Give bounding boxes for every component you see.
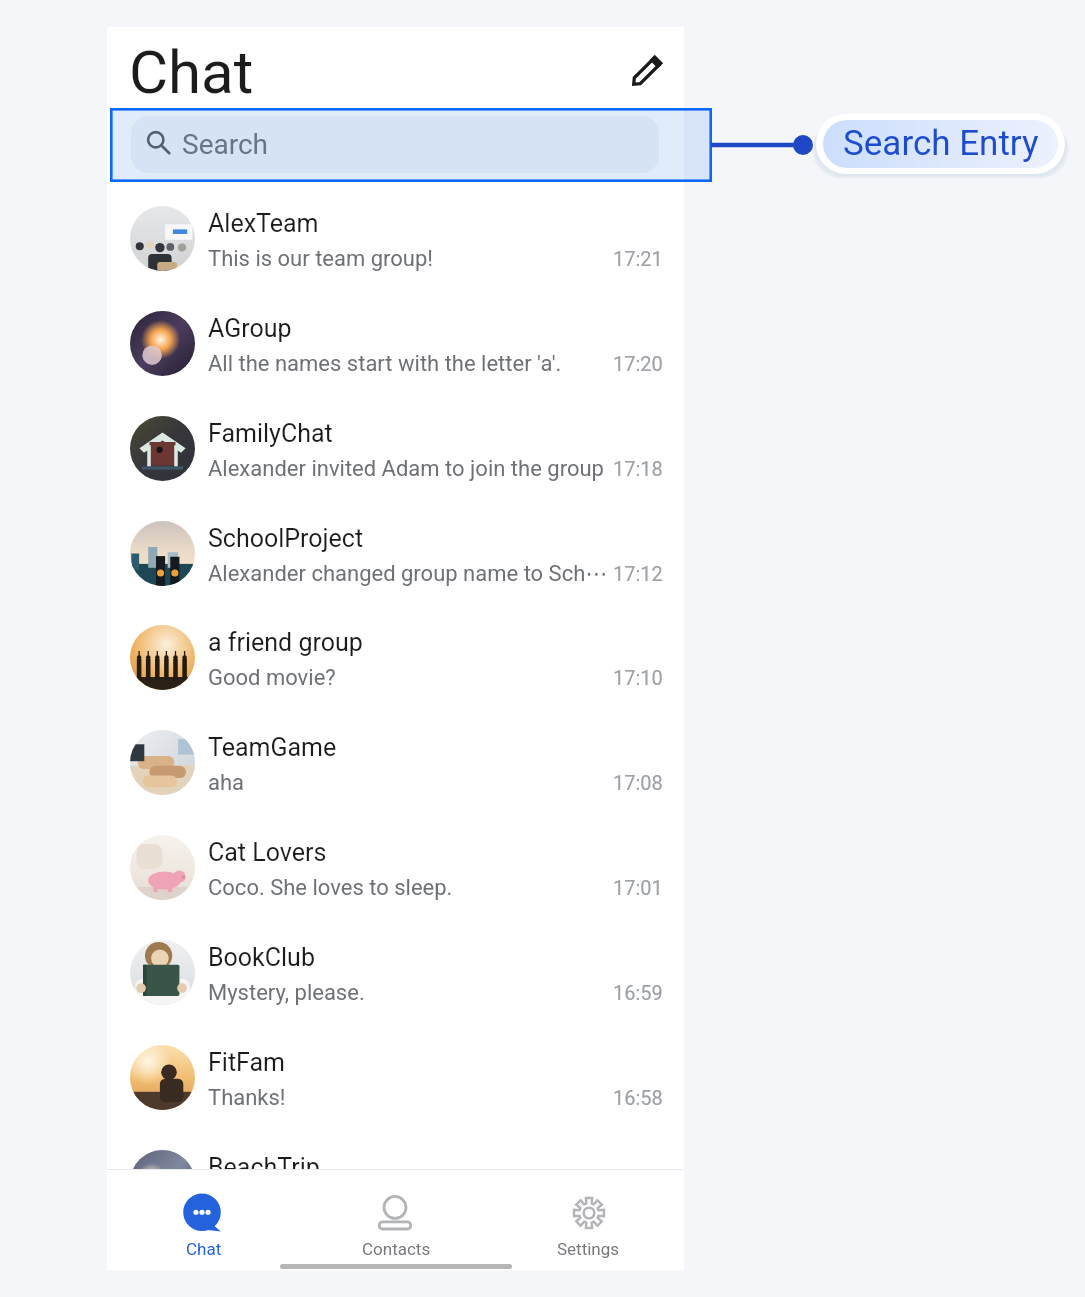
staticText: Settings	[557, 1239, 620, 1259]
staticText: TeamGame	[208, 733, 608, 762]
staticText: 17:01	[613, 876, 663, 899]
staticText: AGroup	[208, 314, 608, 343]
staticText: BeachTrip	[208, 1153, 608, 1169]
staticText: 17:18	[613, 457, 663, 480]
button[interactable]: FamilyChat	[107, 396, 684, 501]
staticText: Alexander invited Adam to join the group	[208, 456, 608, 482]
button[interactable]: Search Entry	[823, 120, 1058, 168]
staticText: aha	[208, 770, 608, 796]
staticText: Mystery, please.	[208, 980, 608, 1006]
button[interactable]: AGroup	[107, 291, 684, 396]
button[interactable]: Compose new message	[619, 42, 675, 98]
staticText: FamilyChat	[208, 419, 608, 448]
staticText: 16:59	[613, 981, 663, 1004]
staticText: Search	[182, 128, 269, 161]
staticText: BookClub	[208, 943, 608, 972]
staticText: 16:58	[613, 1086, 663, 1109]
staticText: Coco. She loves to sleep.	[208, 875, 608, 901]
staticText: Alexander changed group name to Sch⋯	[208, 561, 608, 587]
button[interactable]: Chat tab	[107, 1169, 300, 1270]
staticText: AlexTeam	[208, 209, 608, 238]
staticText: a friend group	[208, 628, 608, 657]
button[interactable]: Cat Lovers	[107, 815, 684, 920]
staticText: Search Entry	[843, 123, 1039, 164]
button[interactable]: FitFam	[107, 1025, 684, 1130]
button[interactable]: BookClub	[107, 920, 684, 1025]
staticText: All the names start with the letter 'a'.	[208, 351, 608, 377]
button[interactable]: a friend group	[107, 605, 684, 710]
staticText: This is our team group!	[208, 246, 608, 272]
staticText: Thanks!	[208, 1085, 608, 1111]
button[interactable]: AlexTeam	[107, 186, 684, 291]
button[interactable]: BeachTrip	[107, 1130, 684, 1169]
staticText: 17:20	[613, 352, 663, 375]
staticText: 17:10	[613, 666, 663, 689]
staticText: 17:12	[613, 562, 663, 585]
button[interactable]: TeamGame	[107, 710, 684, 815]
button[interactable]: Settings tab	[492, 1169, 684, 1270]
staticText: Chat	[129, 37, 254, 107]
staticText: 17:21	[613, 247, 663, 270]
staticText: Contacts	[362, 1239, 431, 1259]
staticText: Cat Lovers	[208, 838, 608, 867]
staticText: SchoolProject	[208, 524, 608, 553]
staticText: Chat	[186, 1239, 222, 1259]
staticText: Good movie?	[208, 665, 608, 691]
staticText: 17:08	[613, 771, 663, 794]
button[interactable]: Contacts tab	[300, 1169, 492, 1270]
button[interactable]: Search	[131, 116, 659, 173]
button[interactable]: SchoolProject	[107, 501, 684, 606]
staticText: FitFam	[208, 1048, 608, 1077]
